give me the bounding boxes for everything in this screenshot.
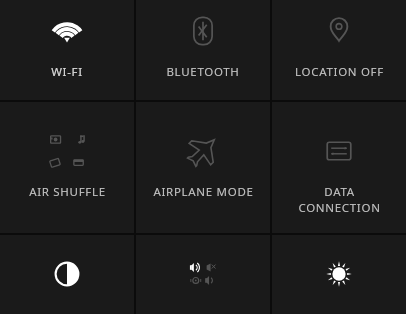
button[interactable]: BLUETOOTH — [136, 0, 270, 100]
button[interactable]: Brightness — [272, 235, 406, 314]
staticText: AIR SHUFFLE — [29, 184, 106, 200]
button[interactable]: Sound mode — [136, 235, 270, 314]
button[interactable]: WI-FI — [0, 0, 134, 100]
staticText: WI-FI — [51, 64, 83, 80]
button[interactable]: DATA CONNECTION — [272, 102, 406, 233]
button[interactable]: LOCATION OFF — [272, 0, 406, 100]
button[interactable]: AIR SHUFFLE — [0, 102, 134, 233]
button[interactable]: AIRPLANE MODE — [136, 102, 270, 233]
staticText: LOCATION OFF — [295, 64, 384, 80]
button[interactable]: Contrast — [0, 235, 134, 314]
staticText: BLUETOOTH — [166, 64, 240, 80]
staticText: AIRPLANE MODE — [153, 184, 254, 200]
staticText: DATA CONNECTION — [298, 184, 381, 215]
